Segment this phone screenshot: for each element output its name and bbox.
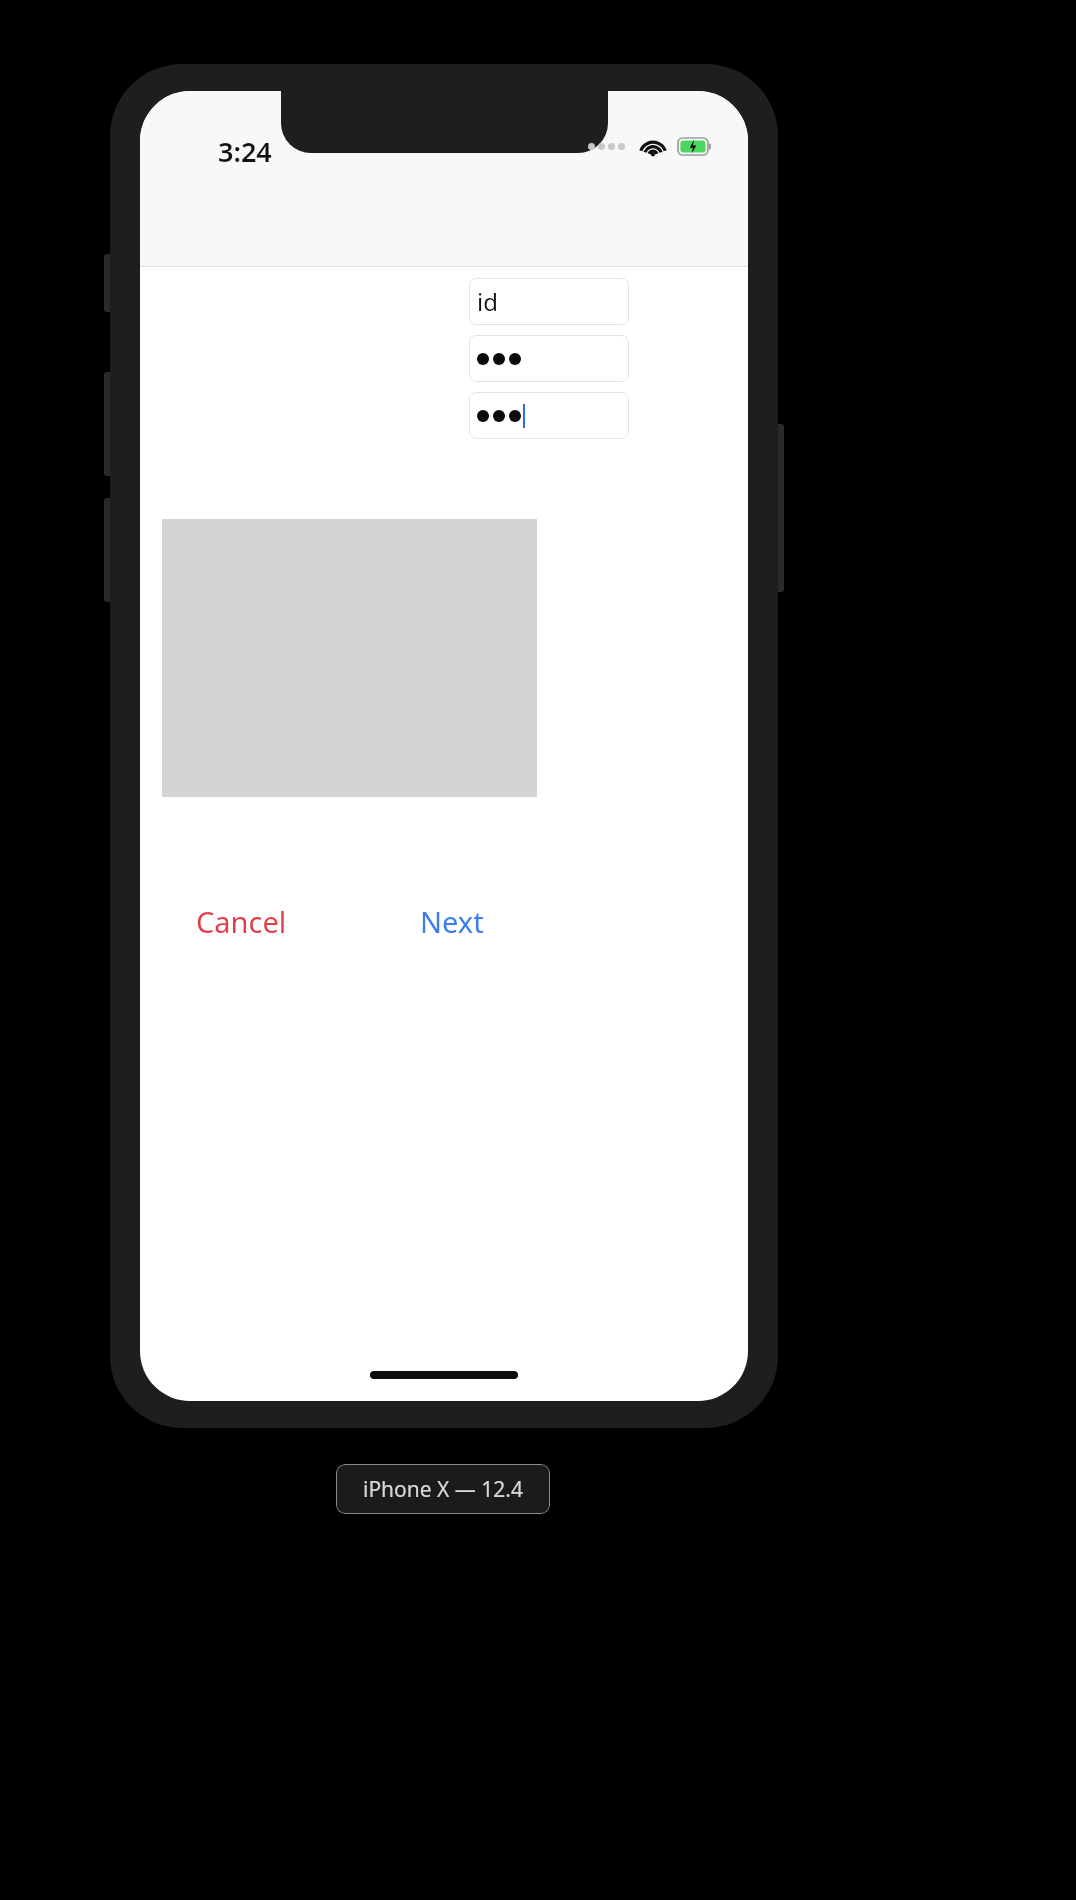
staticText: id	[477, 285, 498, 318]
button[interactable]: id	[469, 278, 629, 325]
staticText: Cancel	[196, 902, 287, 941]
button[interactable]	[469, 392, 629, 439]
staticText: iPhone X — 12.4	[363, 1475, 523, 1504]
staticText: Next	[420, 902, 484, 941]
button[interactable]: Next	[414, 896, 490, 947]
button[interactable]	[469, 335, 629, 382]
button[interactable]: Cancel	[190, 896, 293, 947]
staticText: 3:24	[218, 133, 272, 170]
